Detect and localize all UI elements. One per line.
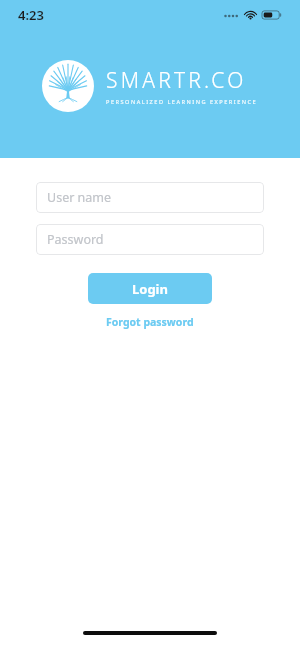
staticText: 4:23: [18, 6, 44, 24]
button[interactable]: User name: [36, 182, 264, 213]
button[interactable]: Forgot password: [100, 313, 200, 331]
button[interactable]: Login: [88, 273, 212, 304]
staticText: Password: [47, 231, 104, 248]
other: Smartr.co logo: [42, 60, 94, 112]
staticText: SMARTR.CO: [106, 66, 247, 95]
staticText: User name: [47, 189, 112, 206]
button[interactable]: Password: [36, 224, 264, 255]
staticText: PERSONALIZED LEARNING EXPERIENCE: [106, 98, 258, 106]
staticText: Forgot password: [106, 315, 194, 329]
staticText: Login: [132, 280, 168, 298]
